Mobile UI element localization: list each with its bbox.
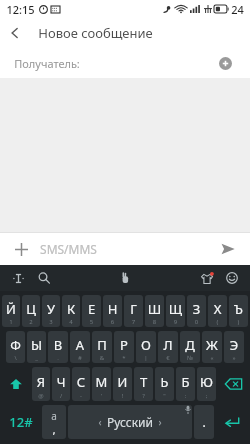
button[interactable]: Attach <box>10 238 32 260</box>
staticText: 4 <box>62 318 80 326</box>
button[interactable]: 12# <box>2 405 40 439</box>
button[interactable]: Theme <box>196 268 216 288</box>
staticText: | <box>136 354 156 362</box>
button[interactable]: Add recipient <box>214 52 236 74</box>
staticText: Ч <box>52 373 70 391</box>
button[interactable]: В <box>48 331 68 363</box>
staticText: 7 <box>124 318 143 326</box>
staticText: @ <box>32 392 50 400</box>
staticText: a <box>42 409 66 423</box>
button[interactable]: О <box>136 331 156 363</box>
button[interactable]: Ж <box>202 331 222 363</box>
button[interactable]: Ы <box>27 331 46 363</box>
button[interactable]: Л <box>158 331 178 363</box>
button[interactable]: Т <box>134 367 153 401</box>
staticText: * <box>114 354 134 362</box>
staticText: 1 <box>2 318 20 326</box>
button[interactable]: ‹ <box>68 405 192 439</box>
button[interactable]: С <box>72 367 90 401</box>
staticText: 5 <box>82 318 101 326</box>
staticText: 3 <box>42 318 60 326</box>
button[interactable]: Ц <box>22 295 40 327</box>
staticText: Русский <box>107 414 153 430</box>
button[interactable]: Ю <box>197 367 216 401</box>
staticText: Х <box>208 300 227 318</box>
staticText: . <box>194 414 214 430</box>
staticText: Е <box>82 300 101 318</box>
staticText: › <box>158 415 162 429</box>
staticText: & <box>92 354 112 362</box>
staticText: , <box>42 423 66 437</box>
button[interactable]: Back <box>0 18 30 48</box>
staticText: ‹ <box>98 415 102 429</box>
staticText: З <box>187 300 206 318</box>
button[interactable]: Е <box>82 295 101 327</box>
staticText: Ж <box>202 336 222 354</box>
button[interactable]: Ш <box>145 295 164 327</box>
button[interactable]: Ь <box>155 367 174 401</box>
staticText: 12:15 <box>6 2 35 17</box>
button[interactable]: Ф <box>6 331 25 363</box>
button[interactable]: Щ <box>166 295 185 327</box>
button[interactable]: Language and comma <box>42 405 66 439</box>
staticText: П <box>92 336 112 354</box>
staticText: 12# <box>9 413 33 431</box>
staticText: Щ <box>166 300 185 318</box>
button[interactable]: А <box>70 331 90 363</box>
staticText: Н <box>103 300 122 318</box>
button[interactable]: Send <box>216 237 240 261</box>
staticText: Д <box>180 336 200 354</box>
button[interactable]: Я <box>32 367 50 401</box>
staticText: А <box>70 336 90 354</box>
staticText: \ <box>6 354 25 362</box>
button[interactable]: У <box>42 295 60 327</box>
staticText: О <box>136 336 156 354</box>
staticText: Г <box>124 300 143 318</box>
button[interactable]: Shift <box>2 367 30 401</box>
staticText: « <box>202 354 222 362</box>
button[interactable]: К <box>62 295 80 327</box>
button[interactable]: . <box>194 405 214 439</box>
staticText: Я <box>32 373 50 391</box>
button[interactable]: Э <box>224 331 244 363</box>
button[interactable]: Х <box>208 295 227 327</box>
staticText: 2 <box>22 318 40 326</box>
button[interactable]: Р <box>114 331 134 363</box>
staticText: ? <box>134 392 153 400</box>
button[interactable]: Ч <box>52 367 70 401</box>
staticText: Й <box>2 300 20 318</box>
button[interactable]: Emoji <box>222 268 242 288</box>
button[interactable]: Backspace <box>218 367 248 401</box>
staticText: SMS/MMS <box>40 241 97 257</box>
button[interactable]: И <box>113 367 132 401</box>
staticText: Получатель: <box>14 56 80 71</box>
button[interactable]: Search <box>34 268 54 288</box>
staticText: К <box>62 300 80 318</box>
staticText: Т <box>134 373 153 391</box>
staticText: Ъ <box>229 300 248 318</box>
staticText: Ц <box>22 300 40 318</box>
staticText: Ы <box>27 336 46 354</box>
staticText: 8 <box>145 318 164 326</box>
button[interactable]: Enter <box>216 405 248 439</box>
staticText: Ф <box>6 336 25 354</box>
staticText: ) <box>229 318 248 326</box>
staticText: 9 <box>166 318 185 326</box>
staticText: Р <box>114 336 134 354</box>
button[interactable]: Б <box>176 367 195 401</box>
staticText: / <box>52 392 70 400</box>
button[interactable]: М <box>92 367 111 401</box>
button[interactable]: Ъ <box>229 295 248 327</box>
button[interactable]: Н <box>103 295 122 327</box>
button[interactable]: Й <box>2 295 20 327</box>
button[interactable]: Д <box>180 331 200 363</box>
button[interactable]: Text cursor <box>8 268 28 288</box>
staticText: Б <box>176 373 195 391</box>
button[interactable]: З <box>187 295 206 327</box>
staticText: С <box>72 373 90 391</box>
staticText: У <box>42 300 60 318</box>
button[interactable]: П <box>92 331 112 363</box>
button[interactable]: Г <box>124 295 143 327</box>
button[interactable]: Handwriting <box>115 268 135 288</box>
